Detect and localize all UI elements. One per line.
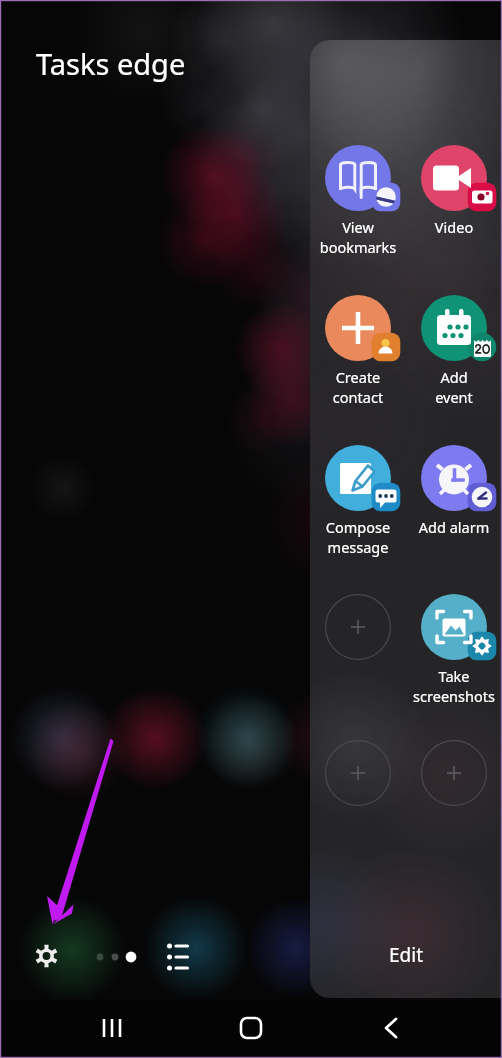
staticText: Take screenshots	[407, 666, 501, 706]
button[interactable]: Add task	[315, 740, 401, 806]
button[interactable]: View bookmarks	[315, 145, 401, 211]
button[interactable]: Add task	[315, 594, 401, 660]
button[interactable]: Edit	[310, 925, 502, 985]
staticText: Edit	[389, 942, 424, 968]
button[interactable]: Add alarm	[411, 445, 497, 511]
staticText: Add event	[407, 367, 501, 407]
button[interactable]: Take screenshots	[411, 594, 497, 660]
staticText: Create contact	[311, 367, 405, 407]
staticText: Video	[407, 217, 501, 237]
staticText: Compose message	[311, 517, 405, 557]
staticText: Tasks edge	[36, 44, 186, 83]
staticText: View bookmarks	[311, 217, 405, 257]
button[interactable]: Compose message	[315, 445, 401, 511]
button[interactable]: Add event	[411, 295, 497, 361]
button[interactable]: Create contact	[315, 295, 401, 361]
staticText: Add alarm	[407, 517, 501, 537]
button[interactable]: Add task	[411, 740, 497, 806]
button[interactable]: Video	[411, 145, 497, 211]
